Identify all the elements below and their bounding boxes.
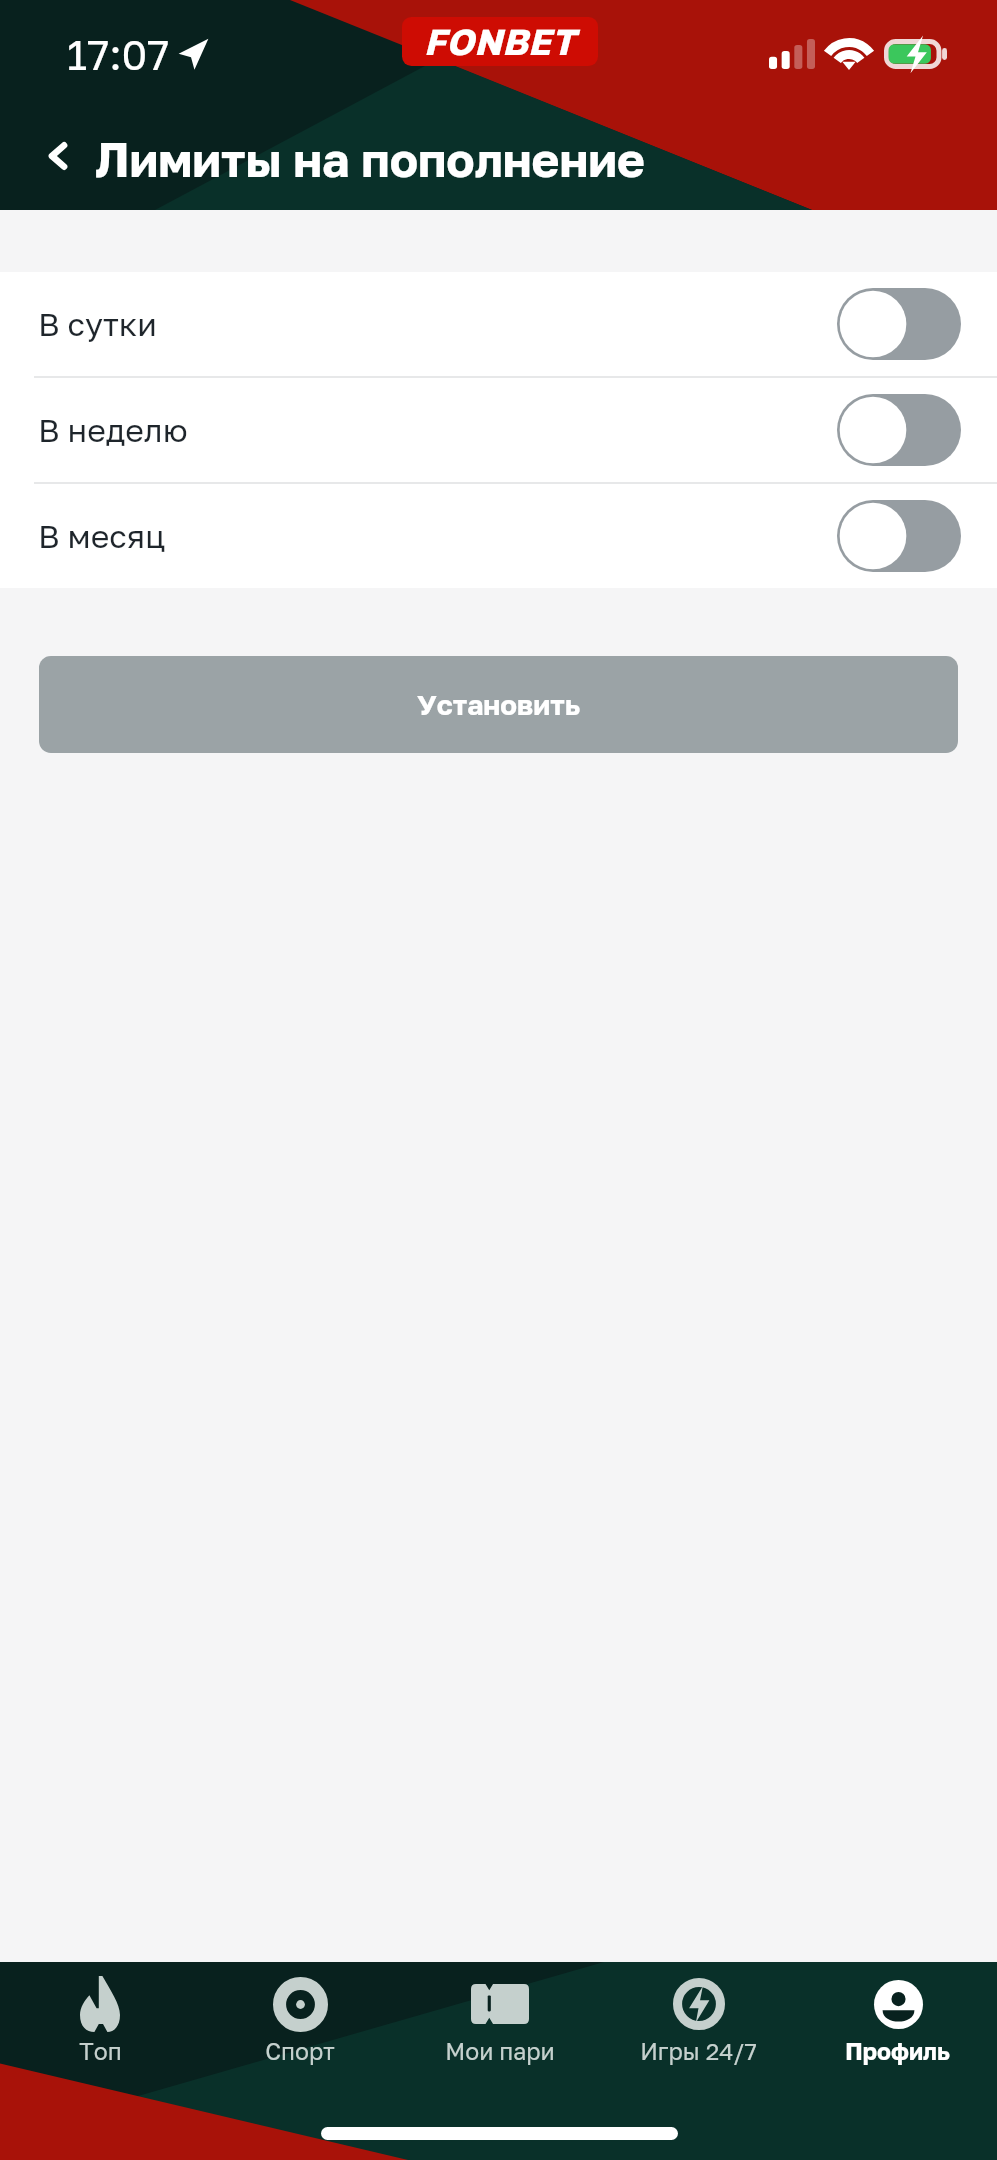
staticText: Установить [417, 688, 580, 721]
button[interactable]: Топ [0, 1962, 200, 2160]
staticText: Профиль [845, 2037, 950, 2065]
staticText: В месяц [38, 517, 166, 556]
staticText: Топ [79, 2037, 122, 2065]
staticText: В сутки [38, 305, 157, 344]
button[interactable]: Мои пари [400, 1962, 599, 2160]
button[interactable]: В сутки [0, 272, 997, 376]
staticText: 17:07 [67, 29, 170, 79]
staticText: Мои пари [445, 2037, 555, 2065]
button[interactable]: В месяц [0, 484, 997, 588]
button[interactable]: Профиль [798, 1962, 997, 2160]
button[interactable]: Back [50, 142, 66, 170]
staticText: Лимиты на пополнение [95, 131, 645, 188]
button[interactable]: Установить [39, 656, 958, 753]
staticText: FONBET [424, 20, 576, 63]
staticText: Спорт [265, 2037, 335, 2065]
staticText: Игры 24/7 [640, 2037, 757, 2065]
button[interactable]: В неделю [0, 378, 997, 482]
staticText: В неделю [38, 411, 188, 450]
button[interactable]: Спорт [200, 1962, 400, 2160]
button[interactable]: Игры 24/7 [599, 1962, 798, 2160]
